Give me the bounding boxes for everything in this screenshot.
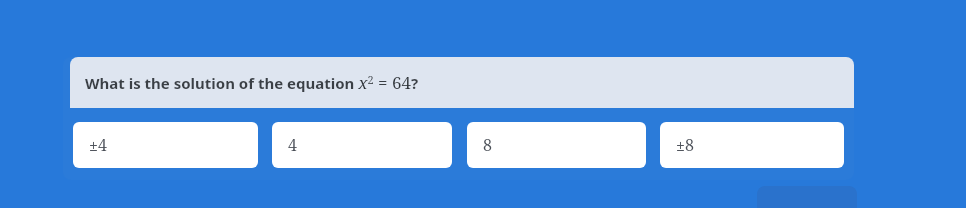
staticText: 8 [483, 134, 492, 156]
staticText: What is the solution of the equation x2 … [85, 71, 419, 94]
button[interactable]: 4 [272, 122, 452, 168]
staticText: 4 [288, 134, 297, 156]
button[interactable]: ±4 [73, 122, 258, 168]
staticText: ±4 [89, 134, 107, 156]
staticText: ±8 [676, 134, 694, 156]
button[interactable]: 8 [467, 122, 646, 168]
button[interactable]: ±8 [660, 122, 844, 168]
